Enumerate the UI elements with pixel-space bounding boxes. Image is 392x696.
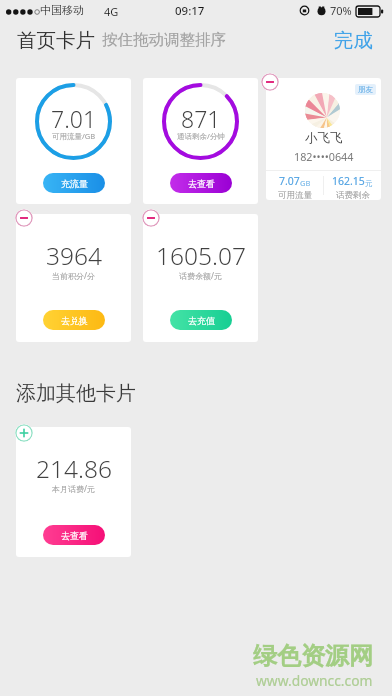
button[interactable]: 214.86 (16, 427, 131, 557)
staticText: 朋友 (358, 85, 373, 94)
button[interactable]: 3964 (16, 214, 131, 342)
staticText: 小飞飞 (305, 130, 343, 146)
button[interactable]: Remove card (142, 209, 160, 227)
button[interactable]: Remove card (15, 209, 33, 227)
staticText: 通话剩余/分钟 (177, 131, 225, 141)
button[interactable]: 去充值 (170, 310, 232, 330)
button[interactable]: 去查看 (43, 525, 105, 545)
staticText: 当前积分/分 (52, 270, 95, 281)
staticText: 充流量 (61, 178, 88, 189)
staticText: 70% (330, 3, 352, 18)
staticText: 去兑换 (61, 315, 88, 326)
staticText: 本月话费/元 (52, 483, 95, 494)
staticText: GB (300, 178, 311, 188)
button[interactable]: Remove card (261, 73, 279, 91)
staticText: 3964 (46, 239, 102, 272)
button[interactable]: 871 (143, 78, 258, 204)
staticText: 话费剩余 (336, 190, 370, 200)
button[interactable]: 7.01 (16, 78, 131, 204)
staticText: 话费余额/元 (179, 270, 222, 281)
button[interactable]: 去查看 (170, 173, 232, 193)
staticText: 可用流量 (278, 190, 312, 200)
staticText: 完成 (334, 28, 373, 53)
staticText: 绿色资源网 (253, 641, 373, 671)
staticText: 可用流量/GB (52, 131, 96, 141)
staticText: 元 (365, 179, 373, 188)
staticText: 去查看 (61, 530, 88, 541)
staticText: 去查看 (188, 178, 215, 189)
button[interactable]: 朋友 (266, 78, 381, 200)
staticText: 182••••0644 (294, 149, 354, 164)
staticText: 去充值 (188, 315, 215, 326)
staticText: 214.86 (36, 452, 112, 485)
button[interactable]: 1605.07 (143, 214, 258, 342)
button[interactable]: 充流量 (43, 173, 105, 193)
staticText: 中国移动 (40, 3, 84, 17)
staticText: 1605.07 (156, 239, 246, 272)
staticText: 4G (104, 4, 119, 19)
staticText: 添加其他卡片 (16, 381, 136, 406)
staticText: 162.15 (332, 174, 365, 188)
button[interactable]: 完成 (332, 26, 375, 55)
button[interactable]: 去兑换 (43, 310, 105, 330)
staticText: 7.01 (51, 103, 97, 134)
staticText: 按住拖动调整排序 (102, 30, 226, 50)
button[interactable]: Add card (15, 424, 33, 442)
staticText: 首页卡片 (17, 28, 95, 53)
staticText: 7.07 (279, 174, 300, 188)
staticText: www.downcc.com (256, 671, 373, 690)
staticText: 871 (181, 103, 221, 134)
staticText: 09:17 (175, 3, 205, 19)
